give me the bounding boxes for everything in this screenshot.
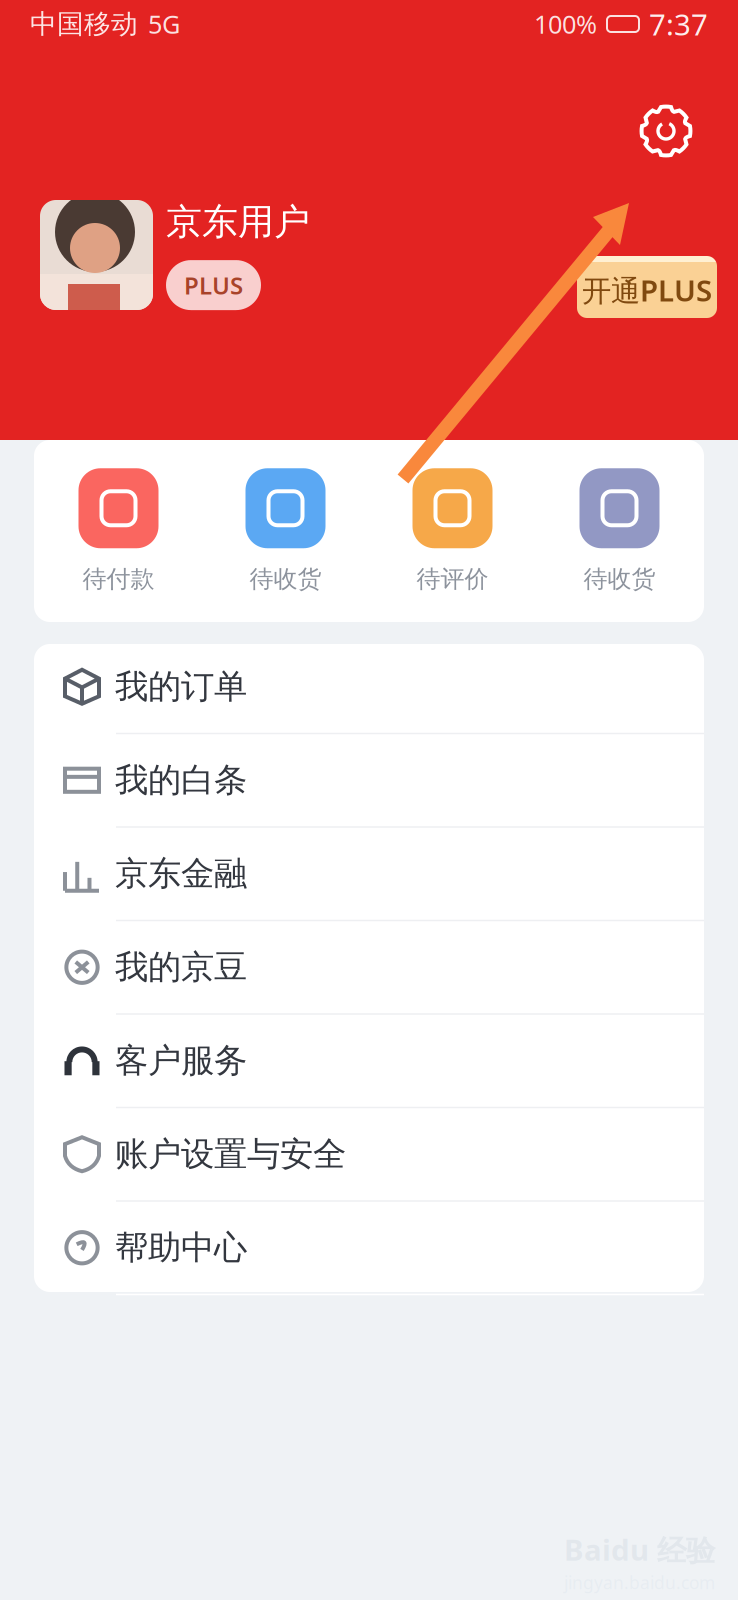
staticText: 我的白条: [115, 760, 247, 801]
button[interactable]: 京东金融: [34, 828, 704, 921]
staticText: 账户设置与安全: [115, 1134, 346, 1175]
button[interactable]: 开通PLUS: [577, 256, 717, 318]
button[interactable]: 待评价: [369, 441, 536, 621]
button[interactable]: 我的订单: [34, 641, 704, 734]
button[interactable]: 我的京豆: [34, 921, 704, 1015]
button[interactable]: 待付款: [35, 441, 202, 621]
staticText: 100%: [534, 7, 597, 41]
staticText: 5G: [148, 7, 180, 41]
button[interactable]: 设置: [628, 93, 704, 169]
staticText: PLUS: [184, 269, 243, 301]
staticText: 开通PLUS: [582, 270, 712, 309]
button[interactable]: 京东用户: [40, 200, 440, 310]
button[interactable]: 待收货: [202, 441, 369, 621]
staticText: 我的京豆: [115, 947, 247, 988]
button[interactable]: 客户服务: [34, 1015, 704, 1108]
button[interactable]: 账户设置与安全: [34, 1108, 704, 1202]
staticText: 京东用户: [166, 200, 310, 244]
staticText: 待收货: [249, 564, 321, 594]
staticText: Baidu 经验: [564, 1530, 715, 1569]
staticText: 京东金融: [115, 853, 247, 894]
staticText: 待付款: [82, 564, 154, 594]
button[interactable]: 帮助中心: [34, 1202, 704, 1295]
staticText: 帮助中心: [115, 1227, 247, 1268]
staticText: 我的订单: [115, 666, 247, 707]
button[interactable]: 我的白条: [34, 734, 704, 828]
staticText: 待评价: [416, 564, 488, 594]
button[interactable]: 待收货: [536, 441, 703, 621]
staticText: 7:37: [649, 4, 708, 43]
staticText: 待收货: [583, 564, 655, 594]
staticText: 中国移动: [30, 8, 138, 40]
staticText: 客户服务: [115, 1040, 247, 1081]
